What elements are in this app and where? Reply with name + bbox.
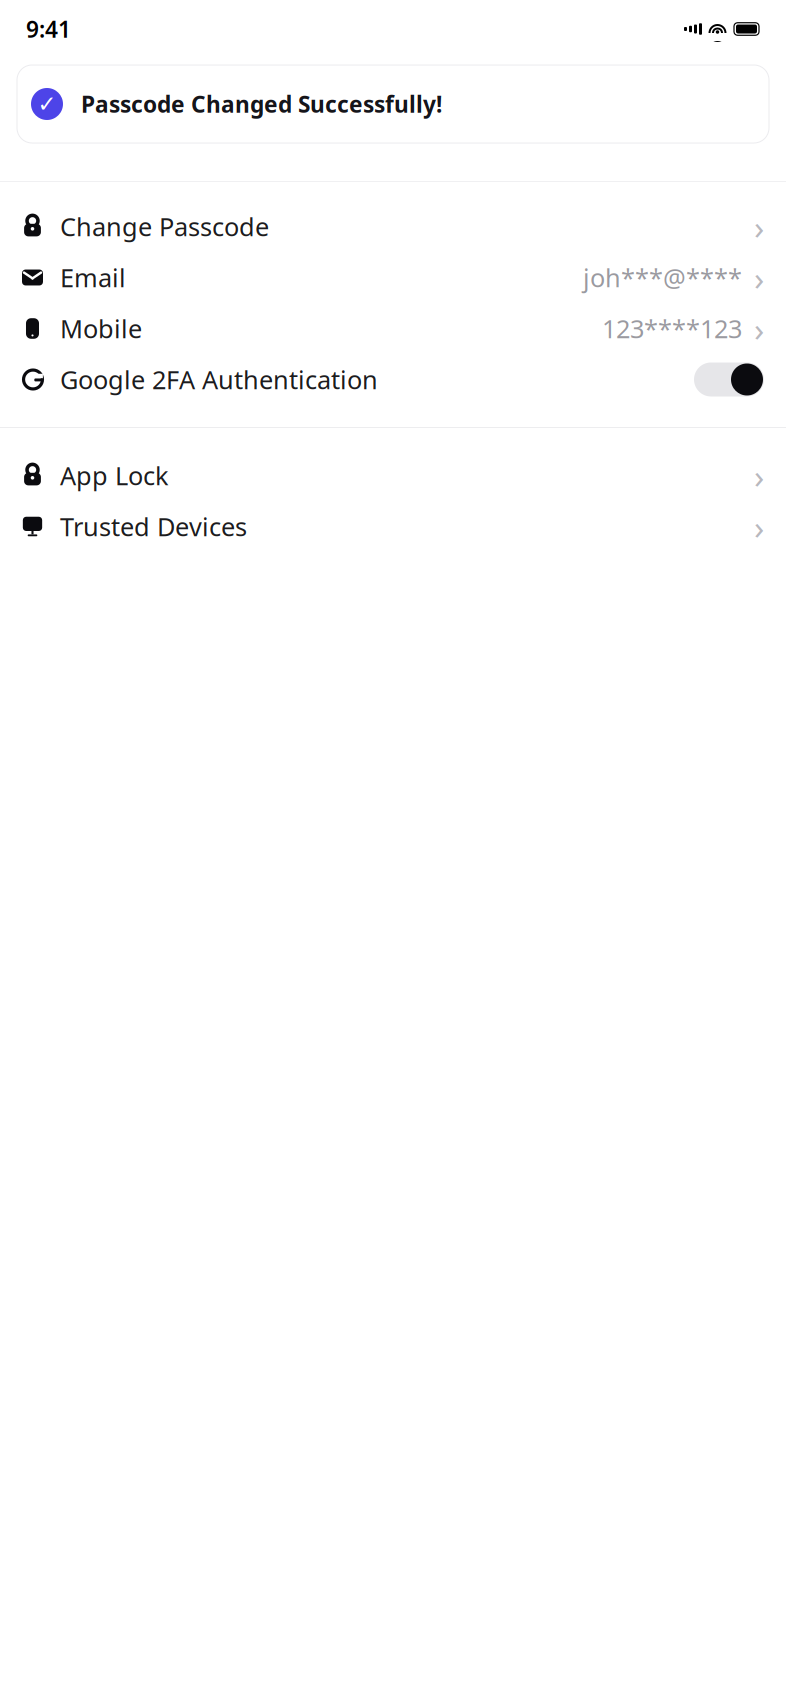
staticText: joh***@****: [583, 261, 742, 294]
staticText: Change Passcode: [60, 210, 269, 243]
staticText: ›: [754, 255, 764, 300]
button[interactable]: App Lock: [0, 450, 786, 501]
button[interactable]: Change Passcode: [0, 201, 786, 252]
staticText: ✓: [37, 91, 56, 117]
staticText: ›: [754, 306, 764, 351]
staticText: Trusted Devices: [60, 510, 247, 543]
staticText: 123****123: [602, 312, 742, 345]
staticText: Passcode Changed Successfully!: [81, 89, 442, 119]
staticText: Email: [60, 261, 126, 294]
button[interactable]: Trusted Devices: [0, 501, 786, 552]
staticText: ›: [754, 204, 764, 249]
staticText: Google 2FA Authentication: [60, 363, 378, 396]
button[interactable]: Mobile: [0, 303, 786, 354]
staticText: ›: [754, 504, 764, 549]
button[interactable]: Email: [0, 252, 786, 303]
staticText: 9:41: [26, 14, 71, 44]
button[interactable]: Google 2FA Authentication: [0, 354, 786, 405]
staticText: ›: [754, 453, 764, 498]
staticText: App Lock: [60, 459, 169, 492]
staticText: Mobile: [60, 312, 142, 345]
